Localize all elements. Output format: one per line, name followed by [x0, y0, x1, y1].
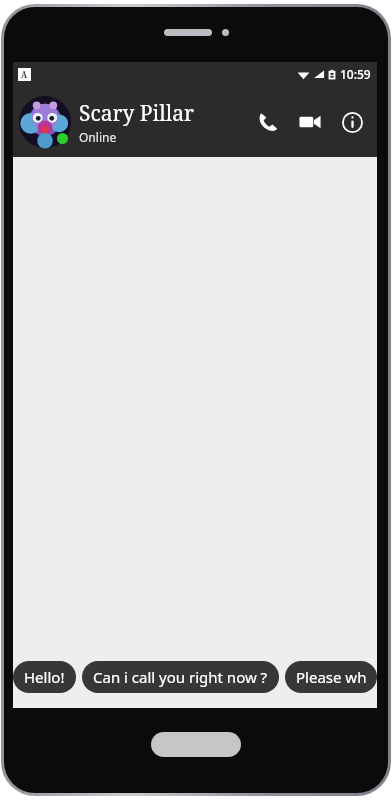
button[interactable]: Home	[151, 732, 241, 757]
button[interactable]: Profile photo	[19, 96, 71, 148]
staticText: Please wh	[296, 667, 366, 687]
staticText: A	[21, 69, 28, 80]
button[interactable]: Hello!	[13, 661, 76, 693]
button[interactable]: Video call	[293, 105, 327, 139]
button[interactable]: Contact info	[335, 105, 369, 139]
button[interactable]: Please wh	[285, 661, 377, 693]
staticText: Scary Pillar	[79, 99, 194, 128]
button[interactable]: Voice call	[251, 105, 285, 139]
staticText: Can i call you right now ?	[93, 667, 268, 687]
staticText: 10:59	[340, 66, 371, 82]
staticText: Online	[79, 129, 117, 145]
staticText: Hello!	[24, 667, 65, 687]
button[interactable]: Can i call you right now ?	[82, 661, 279, 693]
